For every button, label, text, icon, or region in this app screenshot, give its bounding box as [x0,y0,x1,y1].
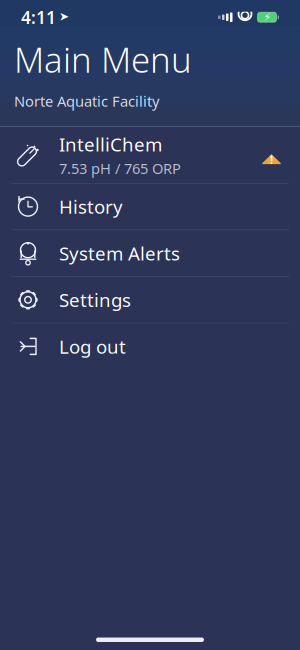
staticText: 4:11 [21,6,56,29]
staticText: ➤ [59,9,69,23]
staticText: System Alerts [59,241,180,266]
button[interactable]: Settings [0,277,300,323]
staticText: IntelliChem [59,132,162,157]
button[interactable]: IntelliChem [0,127,300,184]
staticText: ⚡︎ [263,11,270,23]
staticText: Norte Aquatic Facility [14,91,159,111]
button[interactable]: Log out [0,323,300,369]
staticText: Main Menu [14,36,192,82]
button[interactable]: History [0,184,300,230]
staticText: 7.53 pH / 765 ORP [59,159,181,178]
button[interactable]: System Alerts [0,230,300,277]
staticText: Log out [59,334,126,359]
staticText: Settings [59,287,131,312]
staticText: History [59,194,123,219]
